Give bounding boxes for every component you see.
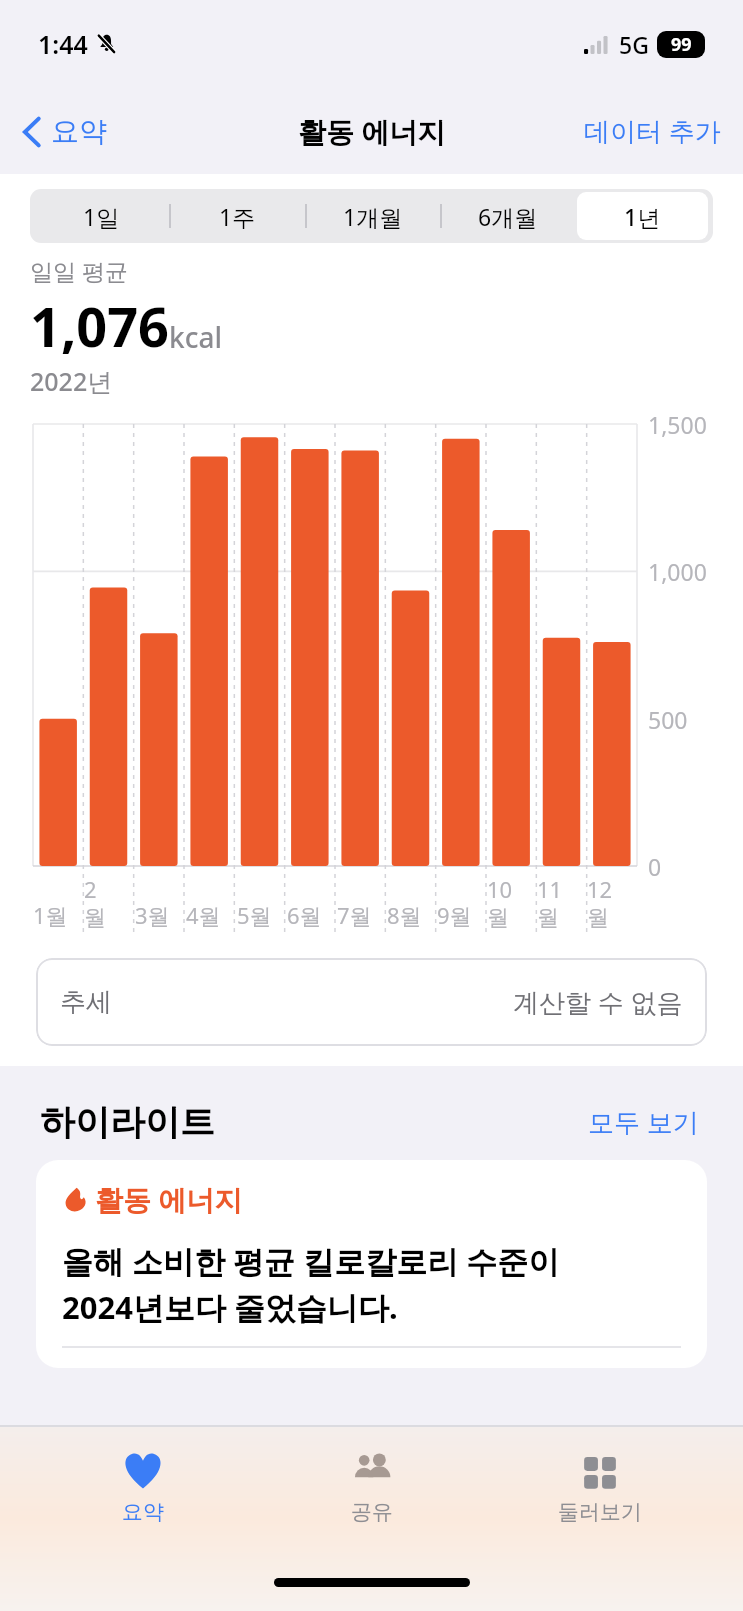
staticText: 모두 보기	[588, 1104, 699, 1140]
button[interactable]: 추세	[36, 958, 707, 1046]
button[interactable]: 공유	[287, 1445, 457, 1527]
staticText: 6월	[287, 900, 322, 930]
staticText: 활동 에너지	[298, 112, 446, 150]
staticText: 올해 소비한 평균 킬로칼로리 수준이 2024년보다 줄었습니다.	[62, 1240, 560, 1328]
staticText: 일일 평균	[30, 255, 128, 286]
button[interactable]: 1년	[577, 192, 708, 240]
staticText: 5G	[619, 29, 649, 60]
staticText: 6개월	[478, 201, 538, 232]
staticText: 1일	[83, 201, 120, 232]
staticText: 추세	[60, 986, 112, 1019]
staticText: 월	[487, 904, 509, 932]
staticText: 데이터 추가	[584, 113, 721, 149]
button[interactable]: 모두 보기	[584, 1100, 703, 1144]
staticText: 7월	[337, 900, 372, 930]
staticText: 500	[648, 704, 688, 735]
staticText: 활동 에너지	[95, 1180, 243, 1218]
staticText: 12	[587, 874, 613, 904]
staticText: 5월	[237, 900, 272, 930]
button[interactable]: 요약	[14, 106, 115, 157]
staticText: 9월	[437, 900, 472, 930]
staticText: kcal	[169, 318, 222, 356]
staticText: 1:44	[38, 27, 88, 61]
staticText: 1,500	[648, 409, 707, 440]
button[interactable]: 둘러보기	[515, 1445, 685, 1527]
staticText: 월	[84, 904, 106, 932]
button[interactable]: 활동 에너지	[36, 1160, 707, 1368]
staticText: 1,000	[648, 556, 707, 587]
button[interactable]: 데이터 추가	[576, 105, 729, 157]
staticText: 3월	[135, 900, 170, 930]
button[interactable]: 6개월	[442, 192, 573, 240]
button[interactable]: 1개월	[307, 192, 438, 240]
staticText: 요약	[122, 1499, 164, 1525]
staticText: 1월	[33, 900, 68, 930]
staticText: 2022년	[30, 364, 113, 398]
staticText: 10	[487, 874, 513, 904]
staticText: 하이라이트	[40, 1100, 215, 1144]
staticText: 월	[587, 904, 609, 932]
staticText: 4월	[186, 900, 221, 930]
staticText: 1년	[624, 201, 661, 232]
staticText: 99	[671, 32, 692, 57]
button[interactable]: 요약	[58, 1445, 228, 1527]
staticText: 요약	[51, 114, 107, 149]
staticText: 0	[648, 851, 662, 882]
staticText: 1주	[219, 201, 256, 232]
staticText: 계산할 수 없음	[513, 984, 683, 1020]
staticText: 둘러보기	[558, 1499, 642, 1525]
button[interactable]: 1일	[35, 192, 167, 240]
staticText: 1,076	[30, 289, 169, 363]
staticText: 2	[84, 874, 97, 904]
staticText: 공유	[351, 1499, 393, 1525]
other: 공유	[349, 1447, 395, 1493]
staticText: 11	[537, 874, 563, 904]
staticText: 월	[537, 904, 559, 932]
staticText: 1개월	[343, 201, 403, 232]
other: 요약	[120, 1447, 166, 1493]
button[interactable]: 1주	[171, 192, 303, 240]
other: 둘러보기	[577, 1447, 623, 1493]
staticText: 8월	[387, 900, 422, 930]
